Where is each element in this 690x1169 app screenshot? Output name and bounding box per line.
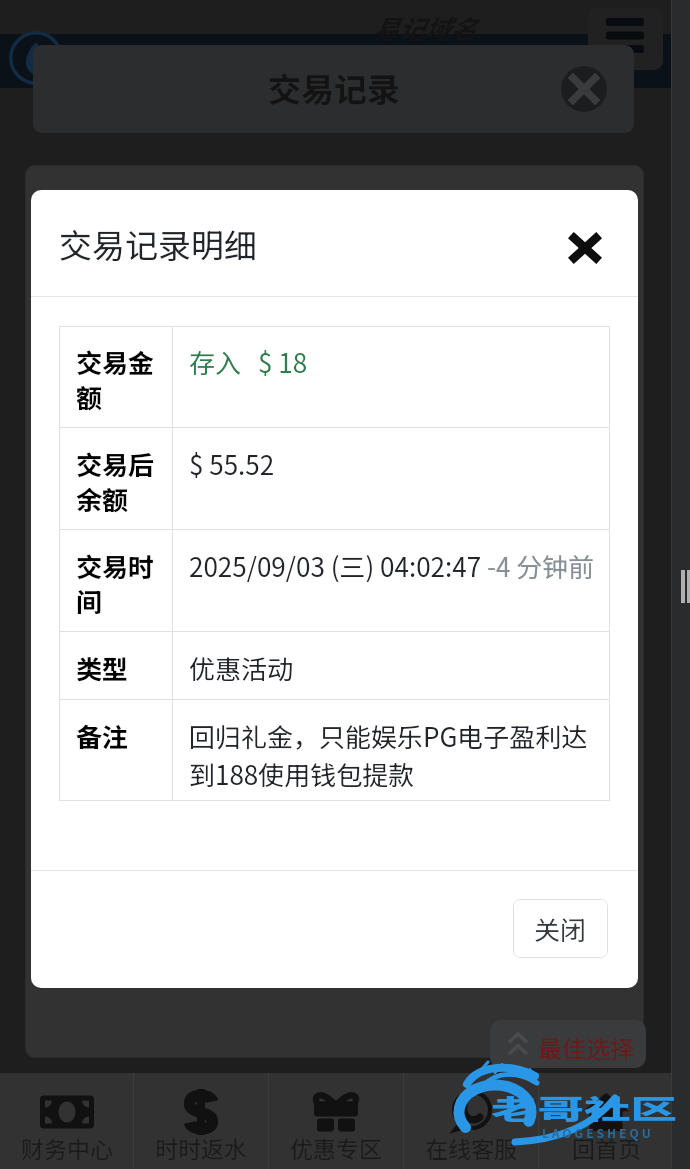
button[interactable]: 优惠专区 [269,1073,403,1169]
staticText: 在线客服 [425,1131,517,1164]
staticText: 交易金额 [76,343,172,416]
staticText: 备注 [76,717,129,755]
staticText: 2025/09/03 (三) 04:02:47 -4 分钟前 [189,547,595,585]
button[interactable]: 关闭 [513,899,608,958]
staticText: 交易记录明细 [59,220,257,268]
button[interactable]: Close [561,66,607,112]
button[interactable]: 财务中心 [0,1073,133,1169]
staticText: 时时返水 [155,1131,247,1164]
staticText: 交易记录 [268,64,400,112]
staticText: 存入 [189,343,242,381]
staticText: 老哥社区 [491,1088,679,1127]
staticText: 易记域名 [372,9,477,47]
staticText: LAOGESHEQU [542,1124,654,1141]
staticText: 优惠活动 [189,649,294,687]
button[interactable]: Close dialog [563,226,607,270]
button[interactable]: 在线客服 [404,1073,538,1169]
staticText: 交易时间 [76,547,172,620]
staticText: 回首页 [572,1131,641,1164]
staticText: 回归礼金，只能娱乐PG电子盈利达到188使用钱包提款 [189,717,610,792]
staticText: 财务中心 [21,1131,113,1164]
staticText: $ 18 [258,343,308,381]
button[interactable]: Menu [588,8,663,70]
button[interactable]: 最佳选择 [490,1020,646,1068]
button[interactable]: 时时返水 [134,1073,268,1169]
staticText: 最佳选择 [538,1030,634,1065]
staticText: 关闭 [534,910,587,948]
staticText: 游戏娱乐 [66,35,202,84]
staticText: 交易后余额 [76,445,172,518]
button[interactable]: 回首页 [539,1073,673,1169]
staticText: 优惠专区 [290,1131,382,1164]
staticText: $ 55.52 [189,445,275,483]
staticText: 类型 [76,649,129,687]
